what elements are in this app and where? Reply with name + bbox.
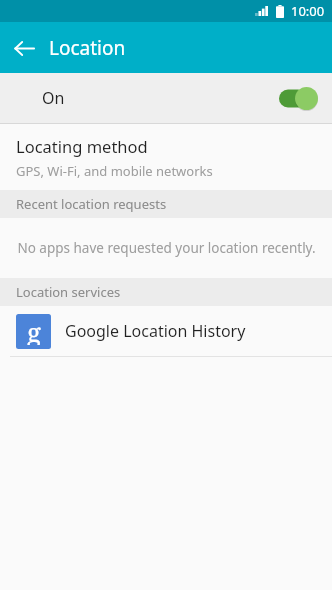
button[interactable]: Navigate up <box>0 24 48 72</box>
staticText: Recent location requests <box>16 195 167 213</box>
staticText: GPS, Wi-Fi, and mobile networks <box>16 162 213 180</box>
button[interactable]: On <box>0 73 332 123</box>
staticText: No apps have requested your location rec… <box>17 239 316 257</box>
staticText: Location <box>49 35 126 61</box>
staticText: On <box>42 87 65 109</box>
button[interactable]: Locating method <box>0 124 332 190</box>
staticText: 10:00 <box>291 2 325 20</box>
staticText: Location services <box>16 283 121 301</box>
staticText: Locating method <box>16 135 148 157</box>
staticText: Google Location History <box>65 320 246 342</box>
button[interactable]: g <box>0 306 332 356</box>
staticText: g <box>27 314 41 345</box>
